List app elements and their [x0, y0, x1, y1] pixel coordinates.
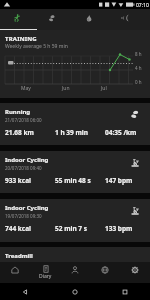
button[interactable]: Community	[90, 262, 120, 283]
staticText: 52 min 7 s	[55, 224, 87, 233]
staticText: 21.68 km	[5, 128, 34, 137]
staticText: 19/07/2018 09:30	[5, 213, 42, 219]
staticText: 55 min 48 s	[55, 176, 91, 185]
staticText: 0 h	[135, 79, 142, 85]
staticText: 4 h	[135, 65, 142, 71]
button[interactable]: Home	[0, 262, 30, 283]
staticText: Indoor Cycling	[5, 156, 49, 164]
staticText: Running	[5, 108, 31, 116]
staticText: Diary	[39, 273, 52, 280]
staticText: 133 bpm	[105, 224, 133, 233]
button[interactable]: Recents	[100, 283, 150, 300]
button[interactable]: Running	[0, 103, 150, 145]
staticText: 1 h 39 min	[55, 128, 88, 137]
staticText: Weekly average 5 h 59 min	[5, 43, 68, 50]
button[interactable]: Diary	[30, 262, 60, 283]
button[interactable]: Indoor Cycling	[0, 199, 150, 242]
button[interactable]: Training	[13, 14, 21, 22]
staticText: Treadmill	[5, 252, 33, 260]
button[interactable]: Steps	[48, 14, 56, 22]
staticText: 20/07/2018 09:40	[5, 165, 42, 171]
staticText: 147 bpm	[105, 176, 133, 185]
button[interactable]: Indoor Cycling	[0, 151, 150, 193]
button[interactable]: Treadmill	[0, 247, 150, 262]
button[interactable]: Home	[50, 283, 100, 300]
staticText: 744 kcal	[5, 224, 32, 233]
staticText: Indoor Cycling	[5, 204, 49, 212]
staticText: TRAINING	[5, 35, 37, 43]
button[interactable]: Back	[0, 283, 50, 300]
staticText: 8 h	[135, 51, 142, 57]
staticText: 07:10	[136, 2, 149, 9]
staticText: Jul	[101, 85, 107, 92]
button[interactable]: Settings	[120, 262, 150, 283]
staticText: May	[21, 85, 31, 92]
staticText: 04:35 /km	[105, 128, 137, 137]
button[interactable]: Sleep	[122, 14, 130, 22]
staticText: 21/07/2018 06:00	[5, 117, 42, 123]
button[interactable]: Profile	[60, 262, 90, 283]
button[interactable]: Calories	[85, 14, 93, 22]
staticText: Jun	[62, 85, 70, 92]
staticText: 933 kcal	[5, 176, 32, 185]
